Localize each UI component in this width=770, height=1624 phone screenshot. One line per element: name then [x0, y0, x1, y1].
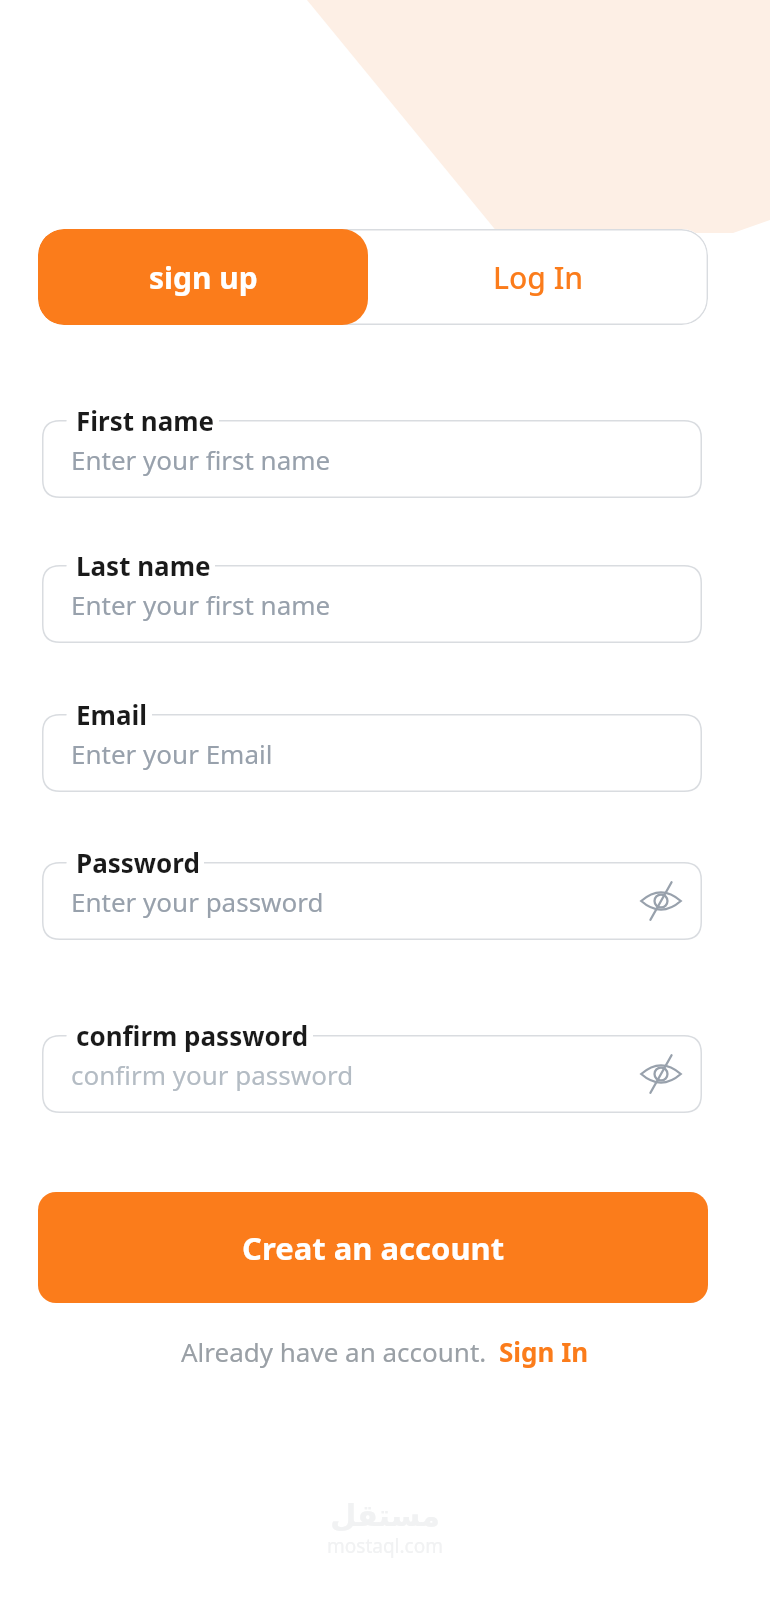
staticText: مستقل: [330, 1498, 440, 1533]
staticText: Enter your first name: [71, 442, 331, 477]
button[interactable]: confirm password: [42, 1035, 702, 1113]
staticText: First name: [76, 403, 215, 438]
staticText: Already have an account.: [181, 1334, 487, 1369]
button[interactable]: Last name: [42, 565, 702, 643]
staticText: confirm your password: [71, 1057, 354, 1092]
staticText: Creat an account: [242, 1227, 505, 1269]
staticText: Email: [76, 697, 148, 732]
staticText: Sign In: [499, 1334, 589, 1369]
button[interactable]: Email: [42, 714, 702, 792]
button[interactable]: sign up: [38, 229, 368, 325]
staticText: Password: [76, 845, 200, 880]
staticText: confirm password: [76, 1018, 309, 1053]
button[interactable]: Password: [42, 862, 702, 940]
staticText: Enter your first name: [71, 587, 331, 622]
button[interactable]: Creat an account: [38, 1192, 708, 1303]
staticText: sign up: [149, 257, 258, 298]
button[interactable]: Log In: [368, 229, 708, 325]
staticText: mostaql.com: [327, 1533, 443, 1559]
button[interactable]: First name: [42, 420, 702, 498]
button[interactable]: Show password: [632, 1045, 690, 1103]
staticText: Log In: [493, 257, 584, 298]
button[interactable]: Show password: [632, 872, 690, 930]
button[interactable]: Already have an account.: [173, 1330, 597, 1373]
staticText: Last name: [76, 548, 211, 583]
staticText: Enter your password: [71, 884, 324, 919]
staticText: Enter your Email: [71, 736, 273, 771]
